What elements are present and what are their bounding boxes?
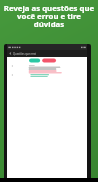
other: Back <box>9 52 12 55</box>
button[interactable]: Back <box>7 50 87 57</box>
staticText: Reveja as questões que você errou e tire… <box>2 3 96 30</box>
staticText: Questões que errei <box>13 52 37 56</box>
